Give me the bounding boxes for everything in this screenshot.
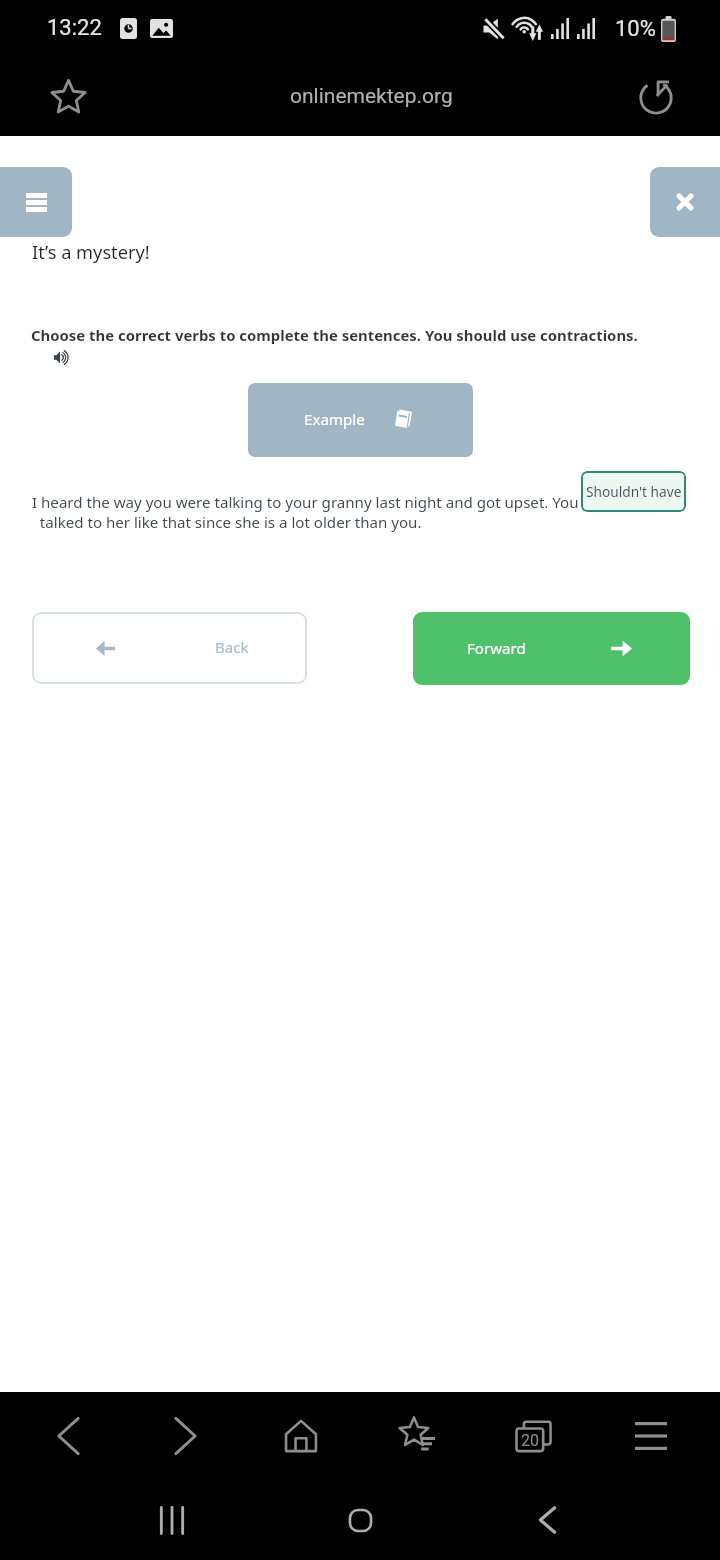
- staticText: onlinemektep.org: [290, 84, 453, 109]
- staticText: 20: [521, 1431, 539, 1450]
- button[interactable]: Back: [28, 1392, 108, 1480]
- staticText: Back: [215, 637, 249, 658]
- staticText: Forward: [467, 638, 526, 659]
- button[interactable]: Close: [650, 167, 720, 237]
- staticText: 13:22: [47, 15, 102, 41]
- button[interactable]: Reload: [628, 68, 684, 124]
- button[interactable]: Play audio: [47, 343, 76, 372]
- button[interactable]: Home: [261, 1392, 341, 1480]
- button[interactable]: Forward: [145, 1392, 225, 1480]
- button[interactable]: Example: [248, 383, 473, 457]
- button[interactable]: Open menu: [0, 167, 72, 237]
- staticText: 10%: [615, 16, 656, 42]
- staticText: It’s a mystery!: [32, 240, 150, 265]
- staticText: Shouldn't have: [586, 482, 682, 501]
- button[interactable]: Tabs: [494, 1392, 574, 1480]
- button[interactable]: Shouldn't have: [581, 471, 686, 512]
- button[interactable]: Bookmarks: [379, 1392, 459, 1480]
- button[interactable]: Menu: [611, 1392, 691, 1480]
- staticText: I heard the way you were talking to your…: [32, 492, 632, 532]
- button[interactable]: Home: [320, 1480, 400, 1560]
- button[interactable]: Bookmark: [40, 68, 96, 124]
- button[interactable]: Back: [507, 1480, 587, 1560]
- button[interactable]: Forward: [413, 612, 690, 685]
- staticText: Example: [304, 409, 365, 430]
- staticText: Choose the correct verbs to complete the…: [31, 325, 638, 345]
- button[interactable]: Recents: [132, 1480, 212, 1560]
- button[interactable]: Back: [32, 612, 307, 684]
